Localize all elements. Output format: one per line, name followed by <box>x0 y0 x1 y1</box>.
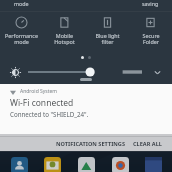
staticText: mode <box>14 0 29 7</box>
staticText: Blue light filter <box>95 32 120 46</box>
staticText: Secure Folder <box>142 32 160 46</box>
staticText: CLEAR ALL <box>133 140 162 148</box>
button[interactable]: Secure Folder <box>129 14 172 46</box>
button[interactable]: Brightness <box>8 65 22 79</box>
button[interactable]: Email <box>37 157 67 172</box>
button[interactable]: Expand <box>150 65 164 79</box>
staticText: Performance mode <box>5 32 38 46</box>
button[interactable]: Camera <box>105 157 135 172</box>
button[interactable]: NOTIFICATION SETTINGS <box>56 140 125 148</box>
button[interactable]: Contacts <box>4 157 34 172</box>
button[interactable]: Performance mode <box>0 14 43 46</box>
button[interactable]: Blue light filter <box>86 14 129 46</box>
staticText: saving <box>142 0 159 7</box>
button[interactable]: Gallery <box>71 157 101 172</box>
button[interactable]: Calendar <box>138 157 168 172</box>
button[interactable]: Drag handle <box>80 78 92 81</box>
staticText: Connected to "SHIELD_24". <box>10 110 89 118</box>
staticText: Mobile Hotspot <box>54 32 75 46</box>
staticText: Android System <box>20 88 58 95</box>
button[interactable]: Brightness slider <box>28 65 142 79</box>
button[interactable]: Mobile Hotspot <box>43 14 86 46</box>
staticText: Wi-Fi connected <box>10 97 74 109</box>
button[interactable]: CLEAR ALL <box>133 140 162 148</box>
button[interactable]: Android System <box>0 84 172 136</box>
staticText: NOTIFICATION SETTINGS <box>56 140 125 148</box>
